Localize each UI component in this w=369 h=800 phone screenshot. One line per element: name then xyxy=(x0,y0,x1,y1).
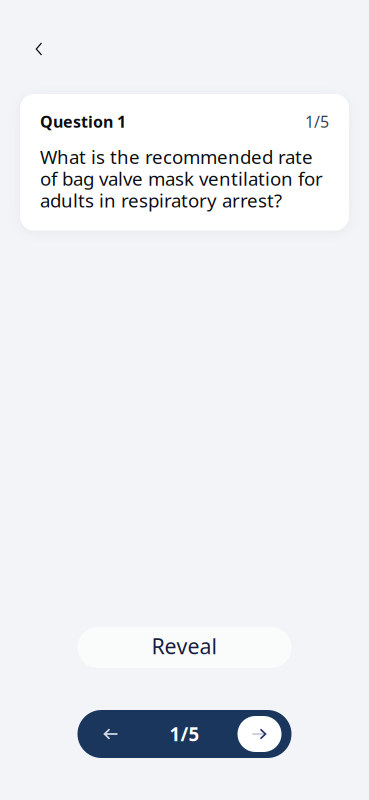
staticText: Reveal xyxy=(151,632,217,660)
staticText: 1/5 xyxy=(169,722,199,746)
staticText: Question 1 xyxy=(40,111,126,132)
button[interactable]: Previous question xyxy=(86,710,134,758)
button[interactable]: Reveal xyxy=(77,627,291,668)
button[interactable]: Next question xyxy=(237,716,281,752)
staticText: 1/5 xyxy=(305,111,329,132)
staticText: What is the recommended rate of bag valv… xyxy=(40,144,323,213)
button[interactable]: Back xyxy=(25,35,53,63)
